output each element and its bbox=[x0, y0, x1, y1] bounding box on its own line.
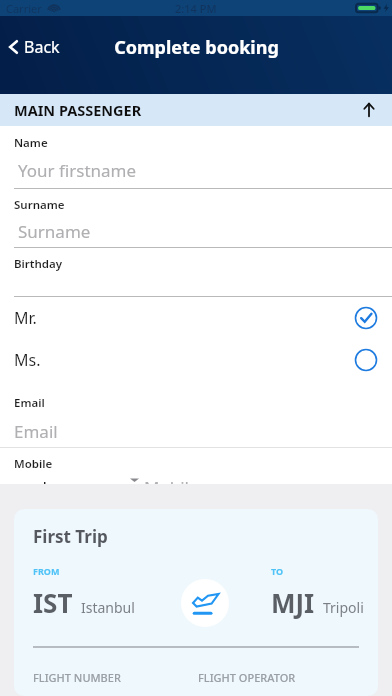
staticText: code bbox=[18, 476, 57, 484]
button[interactable]: Back bbox=[0, 30, 70, 64]
staticText: Your firstname bbox=[18, 159, 137, 182]
staticText: TO bbox=[271, 565, 284, 577]
staticText: 2:14 PM bbox=[175, 1, 217, 16]
staticText: FLIGHT NUMBER bbox=[33, 670, 198, 685]
button[interactable]: Mr. bbox=[0, 297, 392, 339]
staticText: MAIN PASSENGER bbox=[14, 100, 142, 120]
button[interactable]: code bbox=[0, 476, 392, 484]
button[interactable]: First Trip bbox=[14, 509, 378, 696]
staticText: Name bbox=[14, 135, 48, 151]
staticText: Mobile bbox=[144, 476, 199, 484]
button[interactable]: Your firstname bbox=[0, 157, 392, 183]
staticText: Mr. bbox=[14, 307, 37, 329]
staticText: First Trip bbox=[33, 525, 108, 548]
staticText: FLIGHT OPERATOR bbox=[198, 670, 364, 685]
staticText: Surname bbox=[18, 220, 91, 243]
staticText: Carrier bbox=[6, 1, 42, 16]
button[interactable]: Surname bbox=[0, 219, 392, 243]
button[interactable]: Ms. bbox=[0, 339, 392, 381]
staticText: Birthday bbox=[14, 256, 63, 272]
staticText: Email bbox=[14, 420, 58, 443]
button[interactable]: Email bbox=[0, 419, 392, 443]
staticText: Complete booking bbox=[114, 35, 279, 60]
staticText: Surname bbox=[14, 197, 65, 213]
staticText: FROM bbox=[33, 565, 60, 577]
staticText: Istanbul bbox=[81, 598, 135, 617]
other: Collapse section bbox=[360, 101, 378, 119]
staticText: IST bbox=[33, 585, 73, 620]
staticText: Ms. bbox=[14, 349, 41, 371]
staticText: MJI bbox=[271, 585, 315, 620]
staticText: Email bbox=[14, 395, 45, 411]
staticText: Back bbox=[24, 36, 60, 58]
staticText: Tripoli bbox=[323, 598, 364, 617]
staticText: Mobile bbox=[14, 456, 53, 472]
button[interactable]: MAIN PASSENGER bbox=[0, 94, 392, 126]
